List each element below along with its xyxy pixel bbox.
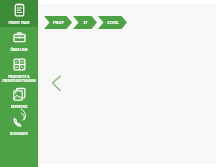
button[interactable]: PRODUKTE & DIENSTLEISTUNGEN — [0, 54, 38, 84]
staticText: ÜBER UNS — [0, 47, 38, 52]
staticText: PRODUKTE & DIENSTLEISTUNGEN — [0, 74, 38, 83]
button[interactable]: FRONT PAGE — [0, 0, 38, 27]
button[interactable]: PROF — [44, 16, 72, 29]
staticText: IT — [83, 20, 88, 26]
button[interactable]: COOL — [98, 16, 127, 29]
button[interactable]: REFERENZ — [0, 84, 38, 111]
button[interactable]: KONTAKTE — [0, 111, 38, 138]
staticText: REFERENZ — [0, 104, 38, 109]
button[interactable]: ÜBER UNS — [0, 27, 38, 54]
button[interactable]: Previous — [46, 72, 68, 94]
staticText: FRONT PAGE — [0, 20, 38, 25]
staticText: KONTAKTE — [0, 131, 38, 136]
button[interactable]: IT — [73, 16, 97, 29]
staticText: PROF — [53, 20, 64, 26]
staticText: COOL — [107, 20, 119, 26]
